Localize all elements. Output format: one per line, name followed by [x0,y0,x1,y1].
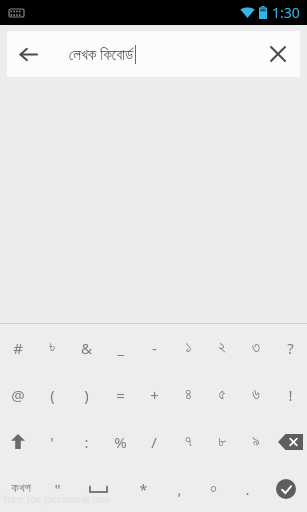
button[interactable]: - [137,324,171,371]
staticText: ৮ [218,434,227,449]
button[interactable]: * [124,465,162,512]
button[interactable]: ৭ [171,418,205,465]
staticText: free for personal use [3,491,111,506]
staticText: _ [117,338,124,358]
staticText: + [150,385,159,405]
button[interactable]: . [230,465,264,512]
staticText: ( [50,385,55,405]
staticText: ০ [210,481,217,496]
button[interactable]: ) [69,371,103,418]
staticText: = [116,385,125,405]
staticText: # [13,338,23,358]
button[interactable]: ? [273,324,307,371]
button[interactable]: = [103,371,137,418]
staticText: ) [84,385,89,405]
button[interactable]: Clear search [256,32,300,76]
button[interactable]: ৯ [239,418,273,465]
button[interactable]: + [137,371,171,418]
button[interactable]: ৩ [239,324,273,371]
button[interactable]: Shift [0,418,35,465]
staticText: ? [287,338,294,358]
staticText: " [54,479,61,499]
staticText: @ [11,385,25,405]
button[interactable]: " [42,465,73,512]
staticText: % [114,432,127,452]
button[interactable]: Enter [264,465,307,512]
button[interactable]: & [69,324,103,371]
button[interactable]: @ [0,371,35,418]
button[interactable]: ১ [171,324,205,371]
staticText: ! [288,385,293,405]
other: Space [89,485,108,493]
staticText: কখগ [11,482,31,495]
button[interactable]: : [69,418,103,465]
button[interactable]: % [103,418,137,465]
button[interactable]: # [0,324,35,371]
button[interactable]: ' [35,418,69,465]
button[interactable]: ৪ [171,371,205,418]
staticText: 1:30 [272,3,300,22]
staticText: * [139,479,148,499]
button[interactable]: ৳ [35,324,69,371]
staticText: ৩ [252,340,260,355]
staticText: & [81,338,92,358]
staticText: . [245,479,250,499]
staticText: / [151,432,157,452]
staticText: ৬ [252,387,260,402]
button[interactable]: কখগ [0,465,42,512]
other: Enter [276,479,296,499]
staticText: : [84,432,89,452]
button[interactable]: ! [273,371,307,418]
staticText: ২ [218,340,226,355]
button[interactable]: ৬ [239,371,273,418]
button[interactable]: , [162,465,196,512]
staticText: ' [50,432,54,452]
other: Shift [11,434,25,449]
button[interactable]: / [137,418,171,465]
staticText: ৯ [252,434,260,449]
staticText: ৭ [185,434,192,449]
staticText: - [152,338,157,358]
button[interactable]: Backspace [273,418,307,465]
staticText: ৫ [218,387,226,402]
button[interactable]: ৮ [205,418,239,465]
staticText: ৳ [49,340,55,355]
staticText: ৪ [185,387,192,402]
button[interactable]: ( [35,371,69,418]
button[interactable]: ৫ [205,371,239,418]
button[interactable]: _ [103,324,137,371]
other: Backspace [278,434,303,450]
button[interactable]: Space [73,465,124,512]
staticText: লেখক কিবোর্ড [69,44,134,64]
staticText: ১ [185,340,192,355]
staticText: , [177,479,182,499]
button[interactable]: ০ [196,465,230,512]
button[interactable]: Back [7,33,49,75]
button[interactable]: ২ [205,324,239,371]
